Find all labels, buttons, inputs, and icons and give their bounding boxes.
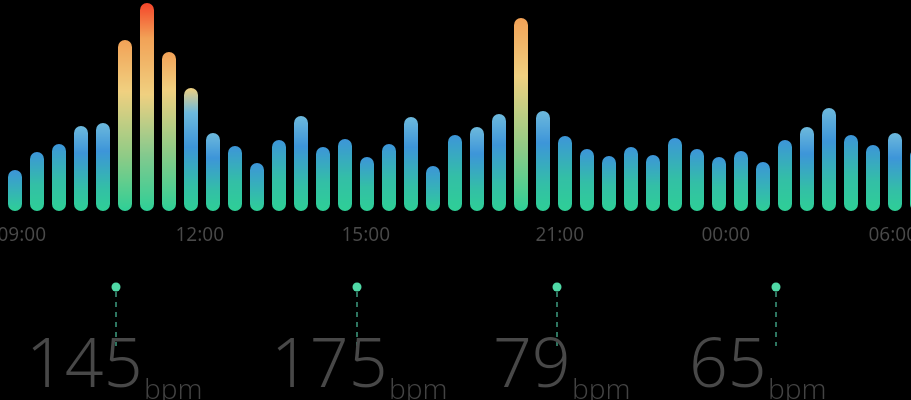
- button[interactable]: Heart rate history chart: [0, 0, 911, 400]
